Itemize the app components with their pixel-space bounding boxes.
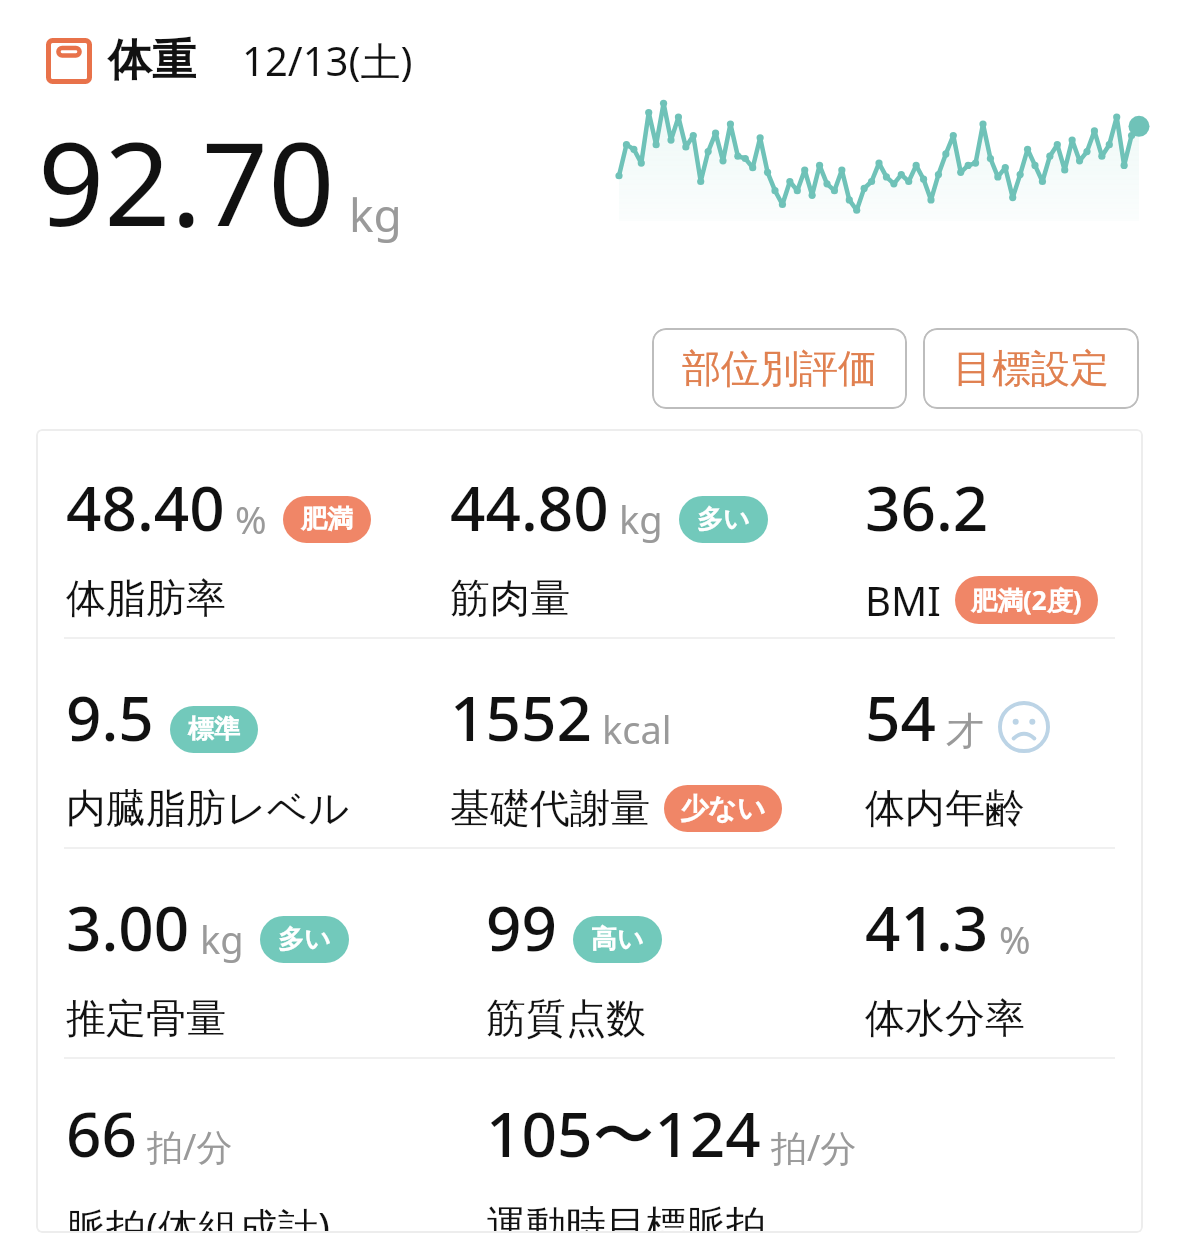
staticText: kg — [619, 493, 663, 545]
button[interactable]: 44.80 — [450, 465, 768, 623]
staticText: 筋肉量 — [450, 573, 570, 623]
staticText: 54 — [865, 675, 936, 759]
staticText: kg — [200, 913, 244, 965]
other: Sad face — [998, 701, 1050, 753]
button[interactable]: 3.00 — [66, 885, 349, 1043]
staticText: 目標設定 — [953, 344, 1109, 393]
button[interactable]: 105〜124 — [486, 1091, 857, 1233]
staticText: 3.00 — [66, 885, 190, 969]
staticText: 運動時目標脈拍 — [486, 1200, 766, 1233]
staticText: 44.80 — [450, 465, 609, 549]
staticText: 99 — [486, 885, 557, 969]
staticText: 92.70 — [38, 102, 335, 260]
staticText: 体重 — [108, 33, 196, 88]
staticText: 体脂肪率 — [66, 573, 226, 623]
staticText: 筋質点数 — [486, 993, 646, 1043]
staticText: 内臓脂肪レベル — [66, 783, 349, 833]
staticText: 体水分率 — [865, 993, 1025, 1043]
staticText: 拍/分 — [771, 1123, 857, 1172]
staticText: 9.5 — [66, 675, 154, 759]
staticText: 多い — [278, 923, 331, 956]
button[interactable]: 目標設定 — [923, 328, 1139, 409]
button[interactable]: 部位別評価 — [652, 328, 907, 409]
staticText: 1552 — [450, 675, 592, 759]
staticText: 脈拍(体組成計) — [66, 1199, 330, 1233]
staticText: 高い — [591, 923, 644, 956]
button[interactable]: 36.2 — [865, 465, 1098, 627]
button[interactable]: 99 — [486, 885, 662, 1043]
staticText: 推定骨量 — [66, 993, 226, 1043]
staticText: 部位別評価 — [682, 344, 877, 393]
staticText: 12/13(土) — [242, 33, 413, 88]
staticText: 105〜124 — [486, 1091, 761, 1176]
staticText: 少ない — [680, 791, 766, 826]
button[interactable]: 54 — [865, 675, 1050, 833]
staticText: % — [235, 493, 267, 545]
button[interactable]: 66 — [66, 1091, 330, 1233]
staticText: 基礎代謝量 — [450, 783, 650, 833]
staticText: 66 — [66, 1091, 137, 1175]
staticText: 肥満 — [301, 503, 353, 536]
staticText: kg — [349, 183, 402, 246]
staticText: kcal — [602, 703, 672, 755]
other: Weight — [46, 38, 92, 84]
staticText: 多い — [697, 503, 750, 536]
staticText: 拍/分 — [147, 1122, 233, 1171]
staticText: BMI — [865, 573, 941, 627]
staticText: 体内年齢 — [865, 783, 1025, 833]
staticText: 標準 — [188, 713, 240, 746]
button[interactable]: 1552 — [450, 675, 782, 833]
staticText: 才 — [946, 707, 984, 755]
staticText: 48.40 — [66, 465, 225, 549]
staticText: % — [999, 913, 1031, 965]
button[interactable]: 41.3 — [865, 885, 1031, 1043]
staticText: 肥満(2度) — [971, 582, 1082, 618]
button[interactable]: 48.40 — [66, 465, 371, 623]
staticText: 36.2 — [865, 465, 989, 549]
staticText: 41.3 — [865, 885, 989, 969]
button[interactable]: 9.5 — [66, 675, 349, 833]
